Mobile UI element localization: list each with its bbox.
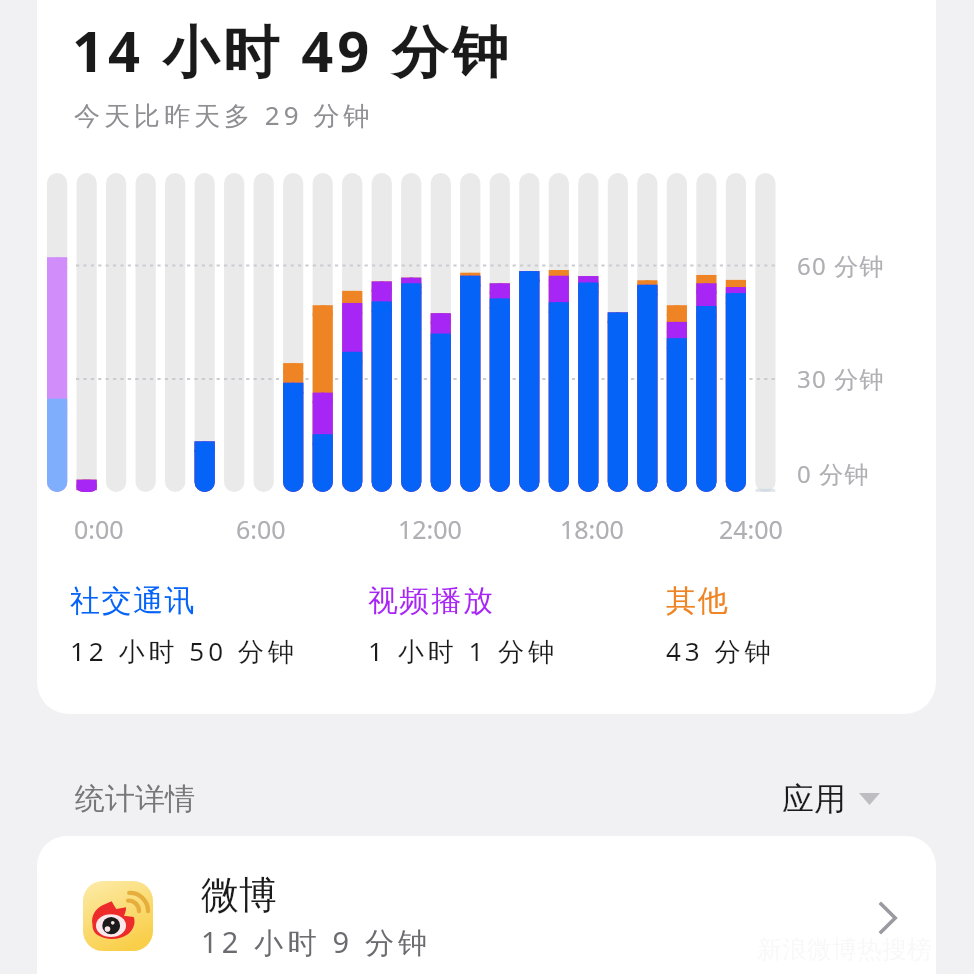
staticText: 43 分钟 <box>666 633 775 669</box>
staticText: 60 分钟 <box>797 249 885 282</box>
staticText: 6:00 <box>236 512 286 546</box>
staticText: 12 小时 50 分钟 <box>70 633 298 669</box>
staticText: 统计详情 <box>75 780 195 818</box>
staticText: 今天比昨天多 29 分钟 <box>74 97 374 133</box>
staticText: 0:00 <box>74 512 124 546</box>
staticText: 0 分钟 <box>797 457 870 490</box>
staticText: 1 小时 1 分钟 <box>368 633 559 669</box>
staticText: 视频播放 <box>368 582 495 620</box>
staticText: 其他 <box>666 582 730 620</box>
staticText: 14 小时 49 分钟 <box>72 12 512 88</box>
button[interactable]: Screen time summary chart <box>37 0 936 714</box>
staticText: 24:00 <box>719 512 783 546</box>
staticText: 应用 <box>782 779 846 819</box>
staticText: 社交通讯 <box>70 582 197 620</box>
button[interactable]: 应用 <box>782 771 880 827</box>
staticText: 12 小时 9 分钟 <box>201 922 432 962</box>
other: Open 微博 details <box>878 901 897 935</box>
staticText: 30 分钟 <box>797 362 885 395</box>
staticText: 微博 <box>201 871 277 919</box>
staticText: 12:00 <box>398 512 462 546</box>
button[interactable]: 微博 <box>37 853 936 974</box>
staticText: 18:00 <box>560 512 624 546</box>
